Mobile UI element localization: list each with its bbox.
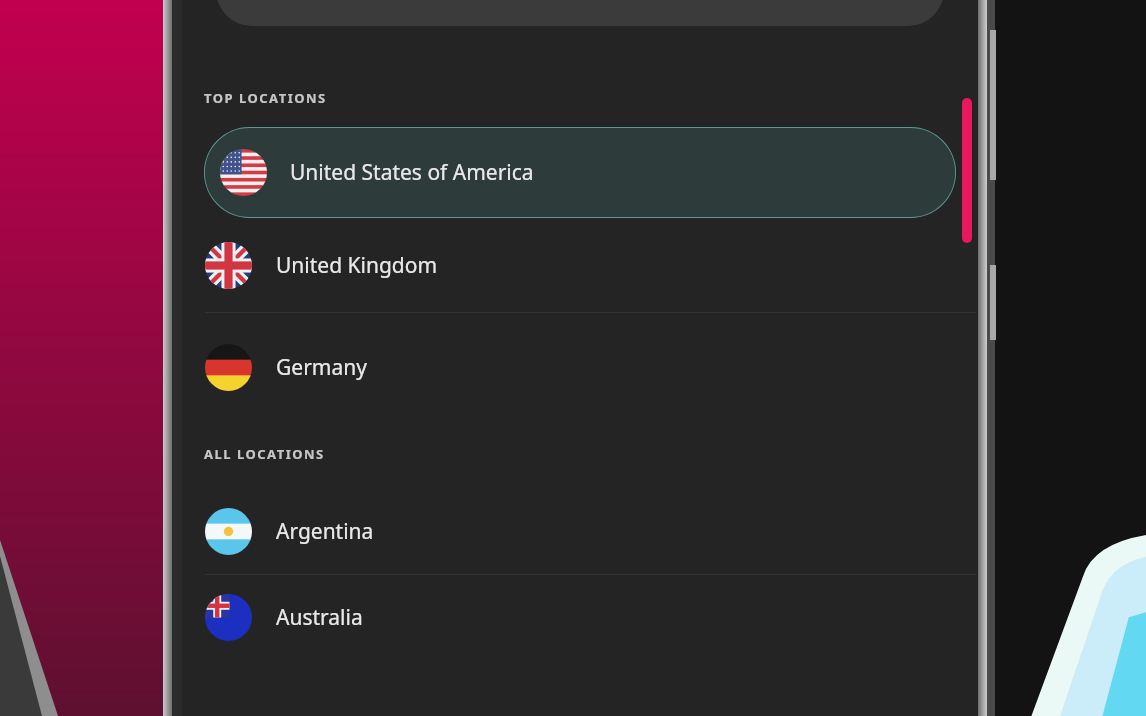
staticText: United States of America [290,158,534,187]
staticText: TOP LOCATIONS [204,89,327,107]
staticText: Australia [276,603,363,632]
button[interactable]: Argentina [182,489,978,574]
button[interactable]: United States of America [204,127,956,218]
button[interactable]: United Kingdom [182,218,978,312]
staticText: United Kingdom [276,251,438,280]
button[interactable]: Australia [182,575,978,660]
staticText: ALL LOCATIONS [204,445,325,463]
button[interactable]: Search [216,0,944,26]
staticText: Argentina [276,517,374,546]
staticText: Germany [276,353,367,382]
button[interactable]: Germany [182,313,978,421]
